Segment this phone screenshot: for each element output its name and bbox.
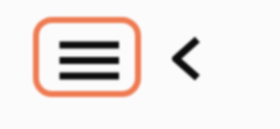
button[interactable]: Back: [164, 30, 208, 86]
button[interactable]: Open navigation menu: [33, 17, 141, 97]
